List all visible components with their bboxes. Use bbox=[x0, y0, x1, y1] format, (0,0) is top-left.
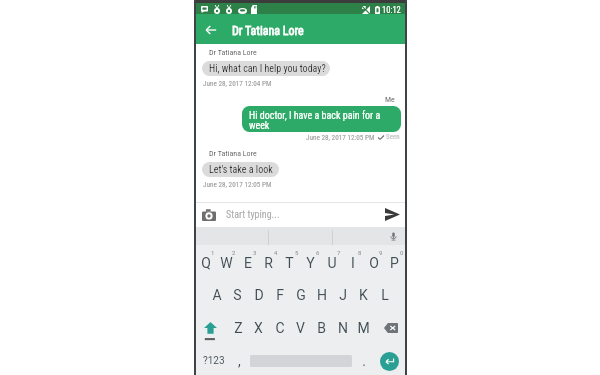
staticText: 9 bbox=[379, 249, 383, 256]
staticText: M bbox=[357, 320, 370, 336]
button[interactable]: W bbox=[216, 244, 237, 277]
button[interactable]: Z bbox=[228, 311, 248, 344]
staticText: D bbox=[254, 287, 264, 303]
button[interactable]: L bbox=[374, 279, 395, 311]
button[interactable]: H bbox=[311, 279, 332, 311]
button[interactable]: ?123 bbox=[196, 345, 232, 375]
staticText: B bbox=[317, 320, 326, 336]
staticText: T bbox=[285, 255, 294, 271]
staticText: G bbox=[296, 287, 306, 303]
button[interactable]: D bbox=[248, 279, 269, 311]
staticText: K bbox=[359, 287, 368, 303]
button[interactable]: E bbox=[237, 244, 258, 277]
staticText: X bbox=[254, 320, 263, 336]
button[interactable]: Backspace bbox=[377, 311, 405, 344]
button[interactable]: M bbox=[353, 311, 374, 344]
staticText: . bbox=[362, 353, 366, 369]
staticText: Seen bbox=[386, 133, 400, 141]
staticText: 3 bbox=[253, 249, 257, 256]
button[interactable]: K bbox=[353, 279, 374, 311]
button[interactable]: C bbox=[269, 311, 290, 344]
staticText: P bbox=[390, 255, 399, 271]
button[interactable]: F bbox=[269, 279, 290, 311]
button[interactable]: Q bbox=[196, 244, 216, 277]
button[interactable]: U bbox=[321, 244, 342, 277]
staticText: V bbox=[296, 320, 305, 336]
staticText: 4 bbox=[274, 249, 278, 256]
staticText: A bbox=[212, 287, 222, 303]
button[interactable]: Camera bbox=[196, 202, 222, 227]
button[interactable]: B bbox=[311, 311, 332, 344]
button[interactable]: Let's take a look bbox=[202, 162, 279, 177]
button[interactable]: Back bbox=[198, 17, 224, 43]
staticText: H bbox=[317, 287, 327, 303]
staticText: S bbox=[233, 287, 242, 303]
staticText: L bbox=[381, 287, 389, 303]
staticText: Me bbox=[385, 95, 395, 104]
button[interactable]: A bbox=[206, 279, 227, 311]
staticText: J bbox=[339, 287, 347, 303]
button[interactable]: Enter bbox=[375, 345, 404, 375]
staticText: , bbox=[238, 353, 241, 369]
button[interactable]: S bbox=[227, 279, 248, 311]
button[interactable]: V bbox=[290, 311, 311, 344]
button[interactable]: X bbox=[248, 311, 269, 344]
button[interactable]: J bbox=[332, 279, 353, 311]
staticText: Z bbox=[234, 320, 243, 336]
staticText: Dr Tatiana Lore bbox=[209, 149, 257, 158]
staticText: C bbox=[275, 320, 285, 336]
button[interactable]: P bbox=[384, 244, 405, 277]
staticText: 0 bbox=[400, 249, 404, 256]
staticText: Q bbox=[201, 255, 211, 271]
staticText: N bbox=[338, 320, 348, 336]
staticText: U bbox=[327, 255, 337, 271]
staticText: R bbox=[264, 255, 273, 271]
button[interactable]: , bbox=[230, 345, 248, 375]
staticText: June 28, 2017 12:05 PM bbox=[203, 180, 272, 188]
button[interactable]: N bbox=[332, 311, 353, 344]
button[interactable]: O bbox=[363, 244, 384, 277]
staticText: 7 bbox=[337, 249, 341, 256]
button[interactable]: . bbox=[355, 345, 373, 375]
staticText: Start typing... bbox=[226, 209, 280, 221]
staticText: 10:12 bbox=[382, 5, 401, 15]
button[interactable]: G bbox=[290, 279, 311, 311]
staticText: Dr Tatiana Lore bbox=[232, 24, 304, 38]
button[interactable]: Hi doctor, I have a back pain for a week bbox=[242, 106, 401, 132]
staticText: Y bbox=[306, 255, 315, 271]
staticText: 1 bbox=[211, 249, 215, 256]
button[interactable]: Hi, what can I help you today? bbox=[202, 61, 330, 76]
staticText: E bbox=[244, 255, 252, 271]
button[interactable]: Voice input bbox=[387, 230, 399, 242]
staticText: Hi, what can I help you today? bbox=[209, 63, 326, 75]
staticText: I bbox=[351, 255, 355, 271]
staticText: 6 bbox=[316, 249, 320, 256]
staticText: June 28, 2017 12:05 PM bbox=[306, 133, 375, 141]
button[interactable]: Y bbox=[300, 244, 321, 277]
button[interactable]: T bbox=[279, 244, 300, 277]
staticText: Let's take a look bbox=[209, 164, 273, 176]
staticText: June 28, 2017 12:04 PM bbox=[203, 79, 272, 87]
staticText: ?123 bbox=[203, 355, 225, 367]
staticText: 2 bbox=[232, 249, 236, 256]
staticText: W bbox=[220, 255, 233, 271]
staticText: F bbox=[276, 287, 284, 303]
button[interactable]: Space bbox=[248, 345, 354, 375]
button[interactable]: Send bbox=[379, 202, 405, 227]
staticText: Hi doctor, I have a back pain for a week bbox=[249, 110, 394, 132]
staticText: Dr Tatiana Lore bbox=[209, 48, 257, 57]
staticText: 8 bbox=[358, 249, 362, 256]
button[interactable]: I bbox=[342, 244, 363, 277]
staticText: 5 bbox=[295, 249, 299, 256]
button[interactable]: Shift bbox=[196, 311, 224, 344]
button[interactable]: R bbox=[258, 244, 279, 277]
staticText: O bbox=[369, 255, 379, 271]
